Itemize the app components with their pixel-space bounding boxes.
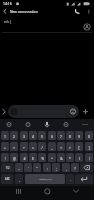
button[interactable]: > [66, 142, 74, 151]
button[interactable]: 1 [1, 131, 9, 140]
button[interactable]: [ [75, 142, 83, 151]
button[interactable]: * [66, 153, 74, 162]
button[interactable]: English (US) [25, 174, 65, 184]
button[interactable]: $ [29, 153, 37, 162]
staticText: * [69, 156, 71, 160]
button[interactable]: 5 [38, 131, 46, 140]
staticText: [ [78, 145, 80, 149]
button[interactable]: ; [52, 163, 60, 172]
staticText: 4 [32, 134, 34, 138]
button[interactable]: 4 [29, 131, 37, 140]
button[interactable]: ? [71, 163, 79, 172]
button[interactable]: 6 [48, 131, 56, 140]
staticText: = [32, 145, 34, 149]
button[interactable] [8, 105, 79, 118]
button[interactable]: # [20, 153, 28, 162]
button[interactable]: ] [85, 142, 93, 151]
staticText: @ [13, 156, 16, 160]
staticText: English (US) [39, 178, 52, 181]
staticText: ; [56, 166, 57, 170]
button[interactable]: ! [1, 153, 9, 162]
button[interactable] [64, 186, 88, 198]
button[interactable]: 3 [20, 131, 28, 140]
staticText: × [13, 145, 15, 149]
button[interactable]: : [43, 163, 51, 172]
button[interactable]: " [33, 163, 41, 172]
staticText: : [47, 166, 48, 170]
button[interactable] [80, 21, 92, 33]
staticText: 6 [51, 134, 53, 138]
staticText: 8 [69, 134, 71, 138]
button[interactable]: % [38, 153, 46, 162]
button[interactable]: < [57, 142, 65, 151]
staticText: 1 [4, 134, 6, 138]
button[interactable]: / [38, 142, 46, 151]
staticText: & [60, 156, 63, 160]
staticText: ( [79, 156, 80, 160]
button[interactable]: 0 [85, 131, 93, 140]
staticText: ] [88, 145, 90, 149]
staticText: 5 [41, 134, 43, 138]
button[interactable]: ' [24, 163, 32, 172]
staticText: ÷ [23, 145, 25, 149]
button[interactable]: ^ [48, 153, 56, 162]
button[interactable]: = [29, 142, 37, 151]
button[interactable]: ABC [1, 174, 13, 184]
staticText: ? [74, 166, 76, 170]
staticText: ) [89, 156, 90, 160]
button[interactable] [75, 174, 93, 184]
staticText: - [18, 166, 20, 170]
staticText: 2 [13, 134, 15, 138]
button[interactable]: ) [85, 153, 93, 162]
staticText: New conversation [10, 9, 38, 13]
button[interactable] [36, 186, 58, 198]
button[interactable]: 9 [75, 131, 83, 140]
button[interactable]: & [57, 153, 65, 162]
staticText: > [69, 145, 71, 149]
staticText: ! [5, 156, 6, 160]
button[interactable]: , [62, 163, 70, 172]
staticText: 0 [88, 134, 90, 138]
button[interactable]: 8 [66, 131, 74, 140]
button[interactable]: + [1, 142, 9, 151]
staticText: / [41, 145, 43, 149]
staticText: ABC [5, 177, 10, 181]
staticText: $ [32, 156, 34, 160]
button[interactable]: @ [10, 153, 18, 162]
button[interactable]: ( [75, 153, 83, 162]
staticText: 7 [60, 134, 62, 138]
button[interactable] [0, 120, 94, 130]
button[interactable] [8, 186, 30, 198]
staticText: 14:16 [3, 1, 12, 6]
button[interactable]: 2 [10, 131, 18, 140]
button[interactable]: ÷ [20, 142, 28, 151]
staticText: # [23, 156, 26, 160]
button[interactable] [80, 163, 93, 172]
button[interactable]: × [10, 142, 18, 151]
staticText: " [36, 166, 38, 170]
staticText: 1/2 [5, 166, 10, 170]
staticText: mb [4, 19, 10, 24]
button[interactable]: . [66, 174, 74, 184]
staticText: + [4, 145, 6, 149]
staticText: . [70, 177, 71, 181]
staticText: ' [28, 166, 29, 170]
button[interactable]: , [15, 174, 23, 184]
button[interactable] [0, 7, 94, 16]
staticText: ^ [51, 156, 53, 160]
button[interactable]: 7 [57, 131, 65, 140]
staticText: < [60, 145, 62, 149]
staticText: % [41, 156, 44, 160]
button[interactable]: 1/2 [1, 163, 14, 172]
staticText: 3 [23, 134, 25, 138]
button[interactable]: - [15, 163, 23, 172]
staticText: 9 [78, 134, 80, 138]
button[interactable]: _ [48, 142, 56, 151]
